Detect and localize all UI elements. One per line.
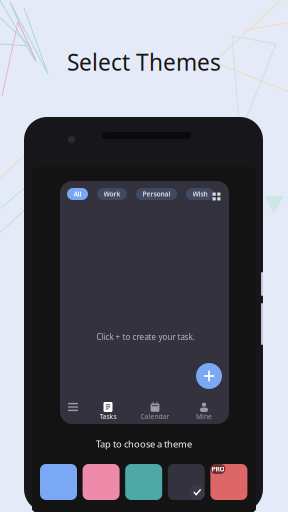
staticText: Tap to choose a theme xyxy=(96,438,192,450)
button[interactable]: Add task xyxy=(196,363,222,389)
staticText: Select Themes xyxy=(67,47,221,77)
button[interactable]: Mine xyxy=(181,390,227,424)
button[interactable]: All xyxy=(67,188,88,200)
button[interactable]: Tasks xyxy=(85,390,131,424)
button[interactable]: Personal xyxy=(136,188,177,200)
button[interactable]: Wish xyxy=(186,188,214,200)
staticText: Click + to create your task. xyxy=(96,332,194,342)
button[interactable]: Teal theme xyxy=(125,464,162,500)
button[interactable]: Dark theme xyxy=(168,464,205,500)
staticText: Mine xyxy=(196,412,212,421)
staticText: PRO xyxy=(211,465,224,473)
button[interactable]: Grid layout xyxy=(212,192,221,201)
staticText: Wish xyxy=(192,190,207,198)
button[interactable]: Red theme xyxy=(210,464,247,500)
staticText: Tasks xyxy=(99,412,116,421)
button[interactable]: Calendar xyxy=(132,390,178,424)
button[interactable]: Work xyxy=(97,188,127,200)
staticText: Personal xyxy=(142,190,170,198)
button[interactable]: Menu xyxy=(58,390,88,424)
button[interactable]: Blue theme xyxy=(40,464,77,500)
button[interactable]: Pink theme xyxy=(83,464,120,500)
staticText: All xyxy=(73,190,81,198)
staticText: Calendar xyxy=(140,412,169,421)
staticText: Work xyxy=(103,190,120,198)
